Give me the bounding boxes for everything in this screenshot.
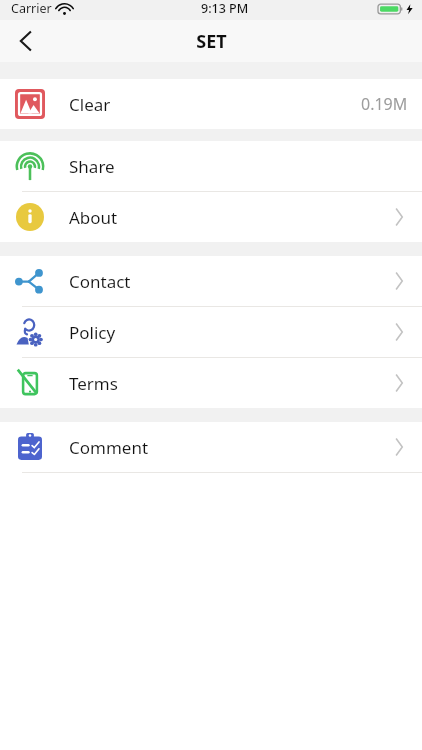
- button[interactable]: Share: [0, 141, 422, 191]
- staticText: Clear: [69, 93, 111, 116]
- staticText: Comment: [69, 436, 149, 459]
- staticText: Contact: [69, 270, 131, 293]
- staticText: 0.19M: [361, 93, 408, 115]
- staticText: Terms: [69, 372, 118, 395]
- button[interactable]: Terms: [0, 358, 422, 408]
- button[interactable]: About: [0, 192, 422, 242]
- staticText: About: [69, 206, 118, 229]
- staticText: Policy: [69, 321, 116, 344]
- button[interactable]: Comment: [0, 422, 422, 472]
- button[interactable]: Contact: [0, 256, 422, 306]
- button[interactable]: Back: [6, 21, 46, 61]
- button[interactable]: Policy: [0, 307, 422, 357]
- staticText: SET: [196, 29, 227, 54]
- staticText: Share: [69, 155, 115, 178]
- staticText: 9:13 PM: [201, 0, 249, 17]
- button[interactable]: Clear: [0, 79, 422, 129]
- staticText: Carrier: [11, 0, 52, 17]
